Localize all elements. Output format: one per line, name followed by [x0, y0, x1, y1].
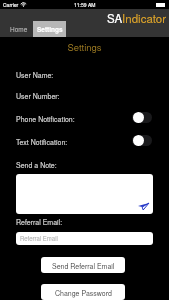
- staticText: Text Notification:: [16, 137, 68, 147]
- button[interactable]: Settings: [33, 21, 66, 37]
- staticText: Send Referral Email: [52, 261, 115, 271]
- staticText: Referral Email: [20, 234, 58, 243]
- staticText: Referral Email:: [16, 217, 63, 227]
- button[interactable]: Text Notification: [132, 135, 152, 146]
- staticText: Home: [10, 25, 28, 34]
- button[interactable]: Send Referral Email: [41, 257, 125, 273]
- other: Send note: [138, 203, 149, 210]
- staticText: User Number:: [16, 91, 60, 101]
- staticText: Settings: [0, 40, 169, 54]
- button[interactable]: Change Password: [41, 284, 125, 300]
- button[interactable]: Home: [4, 21, 33, 37]
- button[interactable]: Send note: [16, 174, 153, 214]
- staticText: Change Password: [55, 288, 112, 298]
- staticText: Settings: [37, 25, 63, 34]
- button[interactable]: Referral Email: [16, 232, 153, 245]
- staticText: Send a Note:: [16, 160, 57, 170]
- button[interactable]: Phone Notification: [132, 112, 152, 123]
- staticText: Phone Notification:: [16, 114, 75, 124]
- staticText: 11:59 AM: [74, 1, 96, 8]
- staticText: User Name:: [16, 70, 54, 80]
- staticText: Carrier: [3, 1, 19, 8]
- staticText: SAIndicator: [107, 10, 167, 26]
